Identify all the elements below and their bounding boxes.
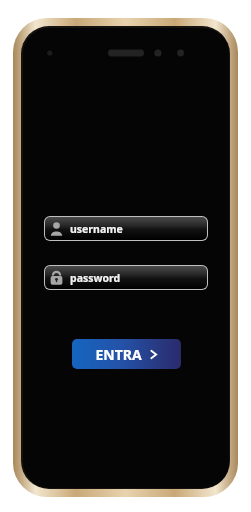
staticText: username [70, 222, 123, 236]
button[interactable]: ENTRA [72, 339, 181, 369]
button[interactable]: password [44, 265, 208, 290]
button[interactable]: username [44, 216, 208, 241]
staticText: password [70, 271, 121, 285]
staticText: ENTRA [95, 345, 142, 364]
